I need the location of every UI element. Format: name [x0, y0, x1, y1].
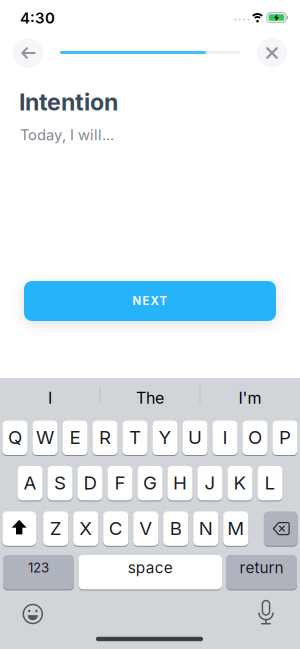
- staticText: T: [129, 426, 141, 449]
- staticText: I: [222, 426, 227, 449]
- button[interactable]: P: [272, 421, 298, 456]
- button[interactable]: return: [226, 555, 297, 590]
- staticText: Intention: [19, 88, 118, 116]
- button[interactable]: D: [77, 466, 103, 501]
- staticText: W: [36, 426, 54, 449]
- staticText: F: [114, 471, 125, 494]
- button[interactable]: U: [182, 421, 208, 456]
- button[interactable]: R: [92, 421, 118, 456]
- staticText: 4:30: [20, 9, 55, 27]
- staticText: C: [109, 517, 123, 539]
- button[interactable]: Delete: [264, 511, 297, 547]
- button[interactable]: A: [17, 466, 43, 501]
- button[interactable]: I'm: [202, 381, 298, 415]
- button[interactable]: N: [193, 511, 218, 547]
- button[interactable]: G: [137, 466, 163, 501]
- button[interactable]: Dictate: [255, 600, 277, 625]
- button[interactable]: S: [47, 466, 73, 501]
- button[interactable]: space: [78, 555, 222, 590]
- button[interactable]: Back: [13, 38, 43, 68]
- staticText: O: [248, 426, 262, 449]
- button[interactable]: Q: [2, 421, 28, 456]
- staticText: return: [239, 558, 283, 577]
- staticText: E: [69, 426, 80, 449]
- staticText: N: [199, 517, 213, 539]
- staticText: I: [48, 388, 52, 408]
- button[interactable]: Shift: [2, 511, 36, 547]
- button[interactable]: Y: [152, 421, 178, 456]
- button[interactable]: E: [62, 421, 88, 456]
- staticText: Today, I will...: [20, 126, 114, 144]
- button[interactable]: B: [163, 511, 188, 547]
- staticText: The: [136, 388, 164, 408]
- staticText: M: [227, 517, 244, 539]
- staticText: R: [99, 426, 111, 449]
- button[interactable]: J: [197, 466, 223, 501]
- staticText: Z: [50, 517, 62, 539]
- staticText: Q: [8, 426, 22, 449]
- button[interactable]: 123: [3, 555, 74, 590]
- staticText: Y: [158, 426, 171, 449]
- button[interactable]: C: [103, 511, 128, 547]
- staticText: NEXT: [132, 294, 167, 308]
- button[interactable]: F: [107, 466, 133, 501]
- button[interactable]: V: [133, 511, 158, 547]
- staticText: P: [279, 426, 291, 449]
- button[interactable]: W: [32, 421, 58, 456]
- staticText: G: [143, 471, 157, 494]
- staticText: H: [173, 471, 187, 494]
- staticText: L: [264, 471, 275, 494]
- button[interactable]: Emoji: [21, 602, 44, 625]
- button[interactable]: K: [227, 466, 253, 501]
- button[interactable]: X: [73, 511, 98, 547]
- button[interactable]: Close: [257, 38, 287, 68]
- button[interactable]: I: [212, 421, 238, 456]
- staticText: X: [79, 517, 92, 539]
- staticText: space: [128, 558, 173, 577]
- button[interactable]: T: [122, 421, 148, 456]
- staticText: B: [170, 517, 182, 539]
- staticText: S: [54, 471, 66, 494]
- staticText: A: [23, 471, 36, 494]
- staticText: U: [188, 426, 202, 449]
- button[interactable]: Z: [43, 511, 68, 547]
- button[interactable]: The: [102, 381, 198, 415]
- staticText: I'm: [238, 388, 261, 408]
- staticText: J: [204, 471, 215, 494]
- button[interactable]: L: [257, 466, 283, 501]
- button[interactable]: I: [2, 381, 98, 415]
- staticText: V: [139, 517, 152, 539]
- staticText: D: [83, 471, 96, 494]
- staticText: 123: [28, 560, 49, 576]
- button[interactable]: M: [223, 511, 248, 547]
- button[interactable]: H: [167, 466, 193, 501]
- button[interactable]: O: [242, 421, 268, 456]
- staticText: K: [233, 471, 246, 494]
- button[interactable]: NEXT: [24, 281, 276, 321]
